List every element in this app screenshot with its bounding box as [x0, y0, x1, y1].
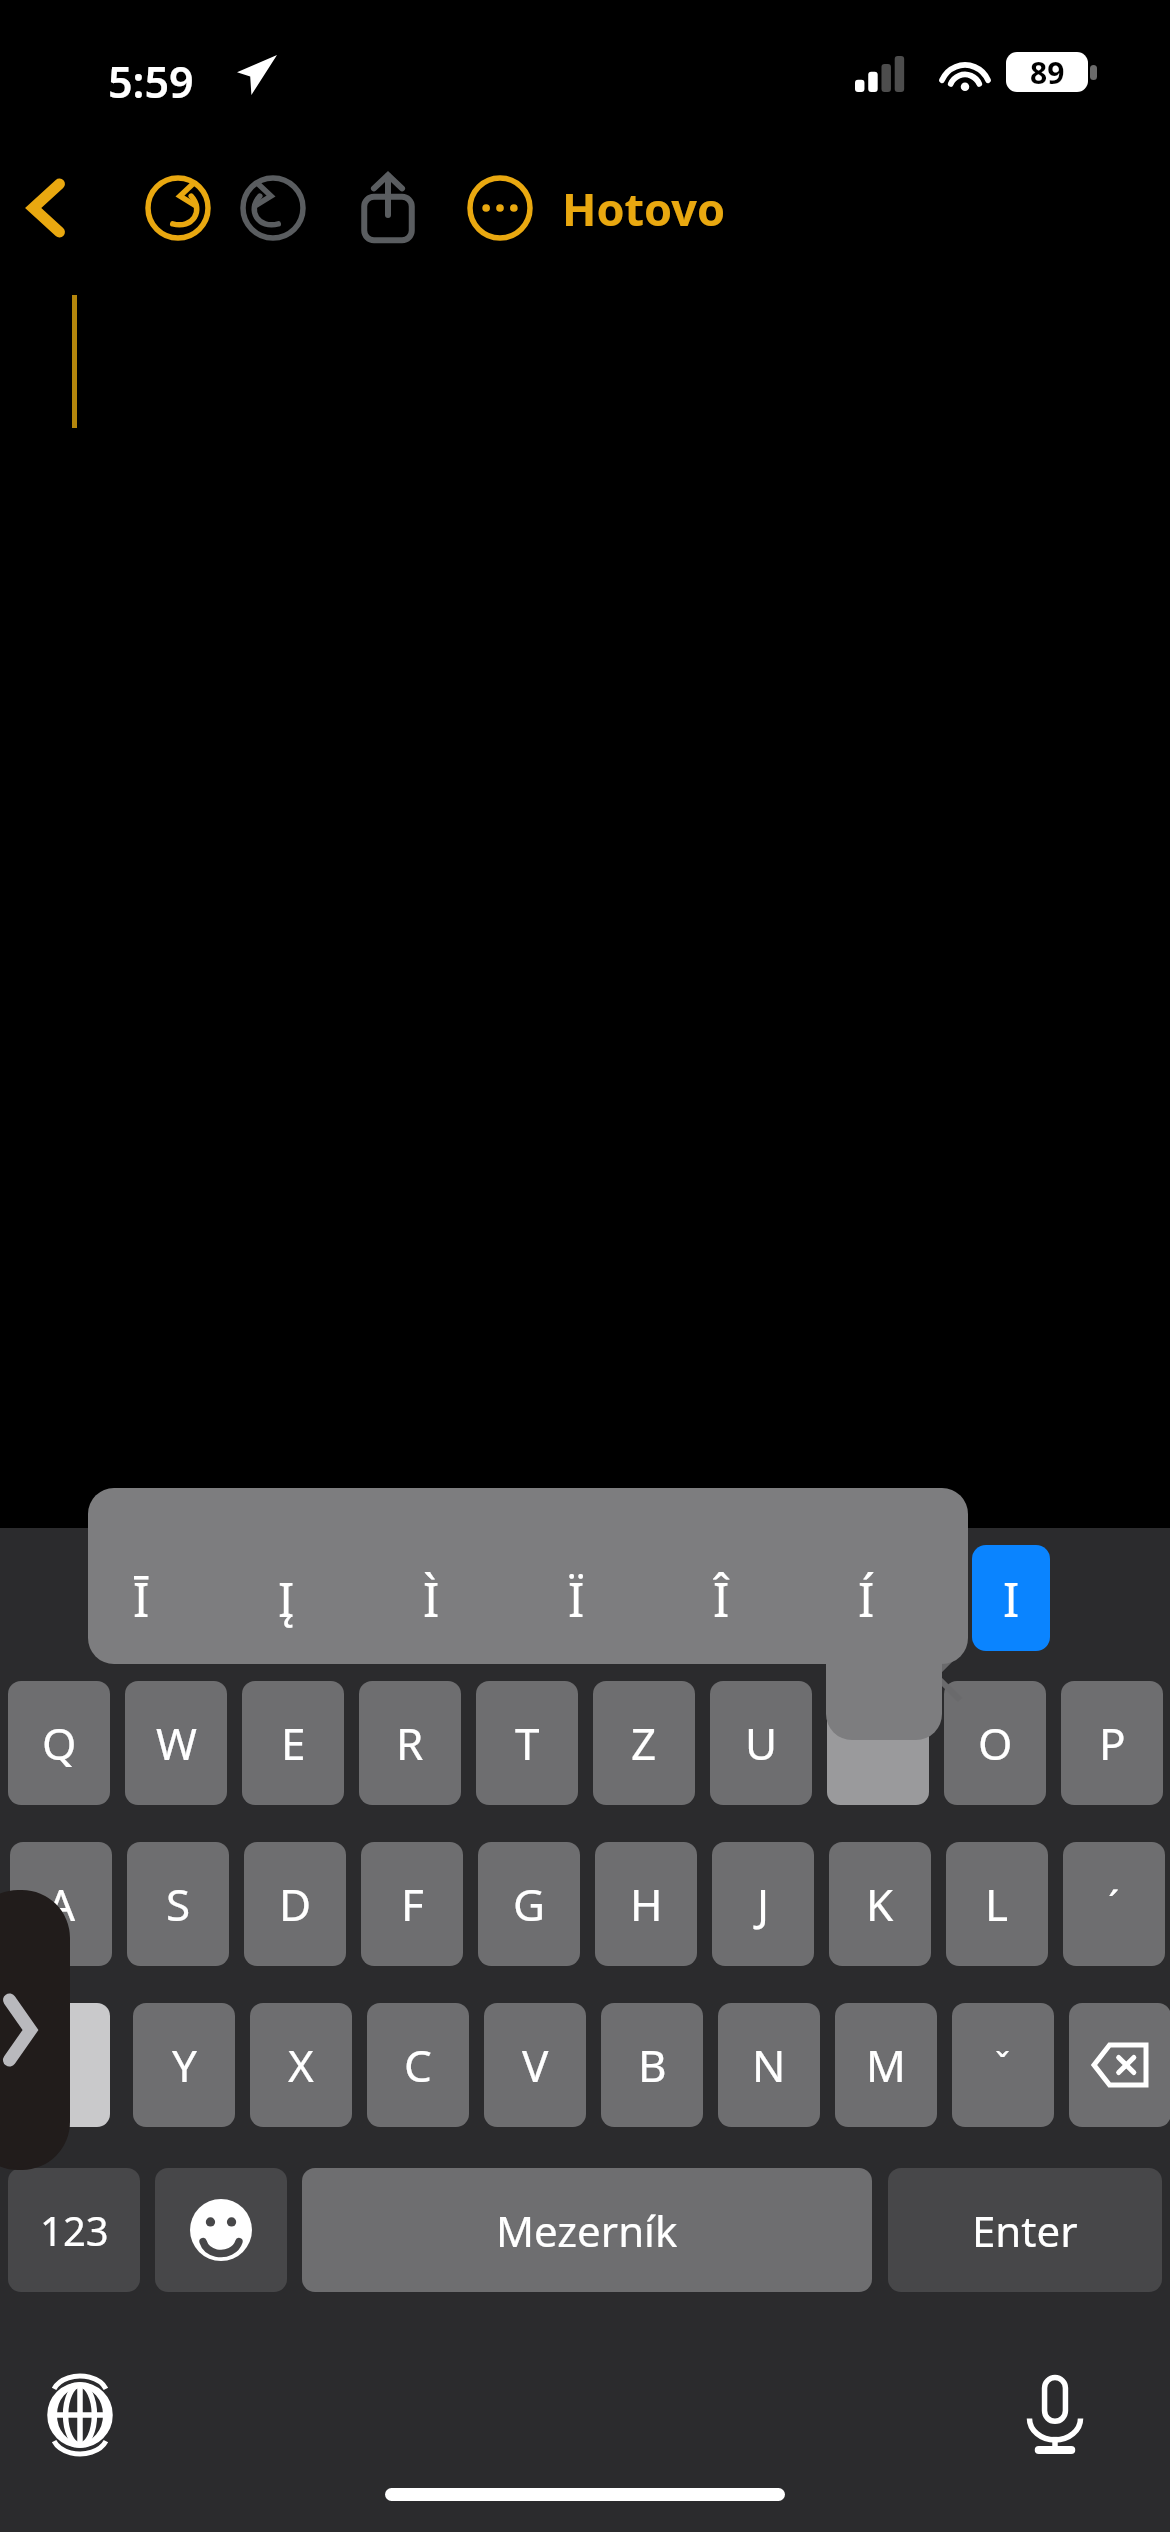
staticText: Ì — [423, 1566, 440, 1631]
button[interactable]: Í — [827, 1545, 905, 1651]
button[interactable]: Q — [8, 1681, 110, 1805]
staticText: V — [522, 2035, 549, 2095]
button[interactable]: Į — [247, 1545, 325, 1651]
staticText: Į — [278, 1566, 295, 1631]
staticText: Hotovo — [562, 178, 726, 239]
button[interactable]: V — [484, 2003, 586, 2127]
staticText: W — [156, 1713, 197, 1773]
staticText: Ï — [568, 1566, 585, 1631]
button[interactable]: C — [367, 2003, 469, 2127]
staticText: Î — [713, 1566, 730, 1631]
button[interactable]: Î — [682, 1545, 760, 1651]
staticText: F — [401, 1874, 424, 1934]
button[interactable]: B — [601, 2003, 703, 2127]
staticText: A — [47, 1874, 76, 1934]
staticText: X — [288, 2035, 314, 2095]
button[interactable]: G — [478, 1842, 580, 1966]
button[interactable]: M — [835, 2003, 937, 2127]
staticText: S — [166, 1874, 191, 1934]
button[interactable]: H — [595, 1842, 697, 1966]
staticText: I — [1003, 1566, 1020, 1631]
button[interactable]: ˇ — [952, 2003, 1054, 2127]
staticText: J — [757, 1874, 770, 1934]
button[interactable]: Emoji — [155, 2168, 287, 2292]
staticText: P — [1099, 1713, 1126, 1773]
button[interactable]: ´ — [1063, 1842, 1165, 1966]
staticText: R — [396, 1713, 424, 1773]
button[interactable]: Z — [593, 1681, 695, 1805]
button[interactable]: S — [127, 1842, 229, 1966]
button[interactable]: Hotovo — [558, 155, 730, 261]
button[interactable]: Share — [340, 155, 436, 261]
button[interactable]: Y — [133, 2003, 235, 2127]
staticText: ´ — [1108, 1877, 1120, 1931]
button[interactable]: K — [829, 1842, 931, 1966]
staticText: G — [513, 1874, 546, 1934]
staticText: Mezerník — [496, 2202, 678, 2259]
staticText: L — [985, 1874, 1009, 1934]
button[interactable] — [827, 1681, 929, 1805]
staticText: Ī — [133, 1566, 150, 1631]
button[interactable]: 123 — [8, 2168, 140, 2292]
button[interactable]: Dictation — [1000, 2355, 1110, 2475]
staticText: N — [752, 2035, 786, 2095]
staticText: 123 — [40, 2203, 109, 2257]
button[interactable]: Ï — [537, 1545, 615, 1651]
button[interactable]: P — [1061, 1681, 1163, 1805]
staticText: M — [866, 2035, 906, 2095]
staticText: Y — [172, 2035, 197, 2095]
staticText: C — [404, 2035, 432, 2095]
button[interactable]: T — [476, 1681, 578, 1805]
staticText: Í — [858, 1566, 875, 1631]
button[interactable]: Enter — [888, 2168, 1162, 2292]
staticText: H — [630, 1874, 663, 1934]
button[interactable]: A — [10, 1842, 112, 1966]
button[interactable]: Close — [880, 1620, 990, 1730]
button[interactable]: Redo — [225, 158, 321, 258]
button[interactable]: Ī — [102, 1545, 180, 1651]
staticText: D — [279, 1874, 312, 1934]
button[interactable]: W — [125, 1681, 227, 1805]
button[interactable]: L — [946, 1842, 1048, 1966]
staticText: Q — [42, 1713, 77, 1773]
staticText: K — [866, 1874, 894, 1934]
button[interactable]: Backspace — [1069, 2003, 1170, 2127]
staticText: 5:59 — [108, 52, 194, 111]
button[interactable]: Ì — [392, 1545, 470, 1651]
button[interactable]: F — [361, 1842, 463, 1966]
button[interactable]: O — [944, 1681, 1046, 1805]
button[interactable]: Shift — [8, 2003, 110, 2127]
button[interactable]: Mezerník — [302, 2168, 872, 2292]
staticText: O — [978, 1713, 1013, 1773]
button[interactable]: U — [710, 1681, 812, 1805]
button[interactable]: R — [359, 1681, 461, 1805]
button[interactable]: Undo — [130, 158, 226, 258]
staticText: T — [515, 1713, 540, 1773]
button[interactable]: More options — [452, 158, 548, 258]
button[interactable]: Back — [0, 158, 92, 258]
staticText: ˇ — [995, 2041, 1011, 2090]
staticText: E — [281, 1713, 306, 1773]
button[interactable]: D — [244, 1842, 346, 1966]
button[interactable]: E — [242, 1681, 344, 1805]
staticText: B — [638, 2035, 667, 2095]
staticText: 89 — [1030, 52, 1065, 92]
button[interactable]: I — [972, 1545, 1050, 1651]
staticText: Enter — [972, 2202, 1078, 2259]
button[interactable]: Change keyboard — [30, 2360, 130, 2470]
staticText: Z — [631, 1713, 657, 1773]
button[interactable]: N — [718, 2003, 820, 2127]
button[interactable]: X — [250, 2003, 352, 2127]
button[interactable]: J — [712, 1842, 814, 1966]
staticText: U — [745, 1713, 778, 1773]
